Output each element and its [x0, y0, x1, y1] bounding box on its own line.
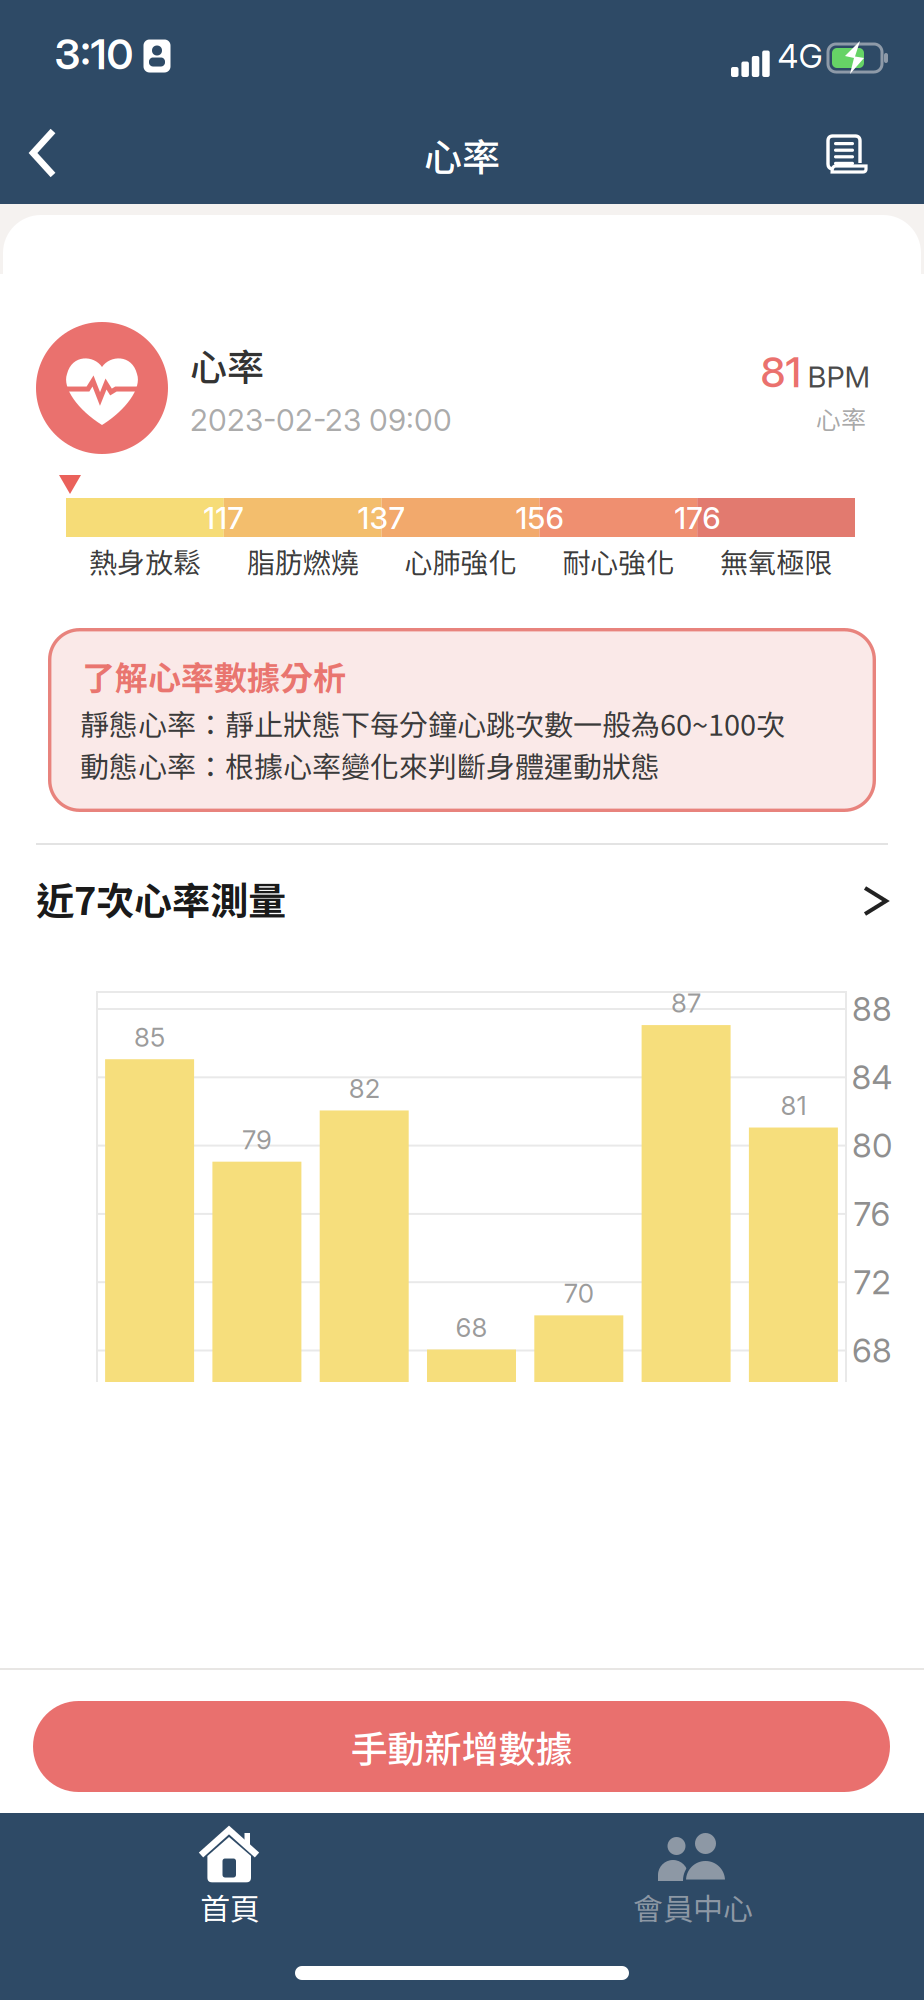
button[interactable]: 會員中心 — [614, 1820, 924, 2000]
staticText: 88 — [852, 989, 892, 1029]
staticText: 68 — [455, 1312, 487, 1343]
button[interactable]: Records — [824, 132, 924, 2000]
staticText: 79 — [242, 1124, 272, 1155]
staticText: 76 — [853, 1194, 890, 1234]
staticText: 會員中心 — [633, 1885, 753, 1929]
staticText: 117 — [203, 500, 244, 536]
staticText: 81 — [780, 1090, 806, 1121]
staticText: 137 — [358, 500, 406, 536]
staticText: 87 — [671, 987, 701, 1019]
staticText: 心率 — [816, 400, 866, 436]
staticText: 3:10 — [54, 29, 133, 79]
staticText: 81 — [760, 347, 801, 397]
staticText: 4G — [777, 36, 822, 76]
staticText: 近7次心率測量 — [36, 871, 286, 926]
button[interactable]: 首頁 — [150, 1820, 924, 2000]
staticText: 80 — [852, 1126, 892, 1165]
button[interactable]: Back — [30, 129, 78, 177]
staticText: 無氧極限 — [720, 541, 832, 581]
button[interactable]: 近7次心率測量 — [36, 872, 924, 932]
button[interactable]: 手動新增數據 — [33, 1701, 890, 1792]
staticText: BPM — [807, 359, 870, 395]
staticText: 84 — [851, 1057, 892, 1097]
staticText: 心率 — [190, 338, 264, 392]
staticText: 動態心率：根據心率變化來判斷身體運動狀態 — [80, 744, 660, 786]
staticText: 68 — [852, 1330, 892, 1370]
staticText: 70 — [564, 1278, 594, 1309]
staticText: 脂肪燃燒 — [247, 541, 359, 581]
staticText: 手動新增數據 — [350, 1720, 572, 1773]
staticText: 首頁 — [200, 1885, 260, 1929]
staticText: 156 — [515, 500, 563, 536]
staticText: 72 — [853, 1262, 890, 1302]
staticText: 耐心強化 — [562, 541, 674, 581]
staticText: 82 — [349, 1073, 380, 1104]
staticText: 熱身放鬆 — [89, 541, 201, 581]
staticText: 176 — [674, 500, 720, 536]
staticText: 心肺強化 — [404, 541, 516, 581]
staticText: 靜態心率：靜止狀態下每分鐘心跳次數一般為60~100次 — [80, 702, 785, 744]
staticText: 2023-02-23 09:00 — [190, 402, 452, 438]
staticText: 85 — [134, 1021, 165, 1053]
staticText: 心率 — [424, 127, 500, 182]
staticText: 了解心率數據分析 — [82, 652, 346, 700]
